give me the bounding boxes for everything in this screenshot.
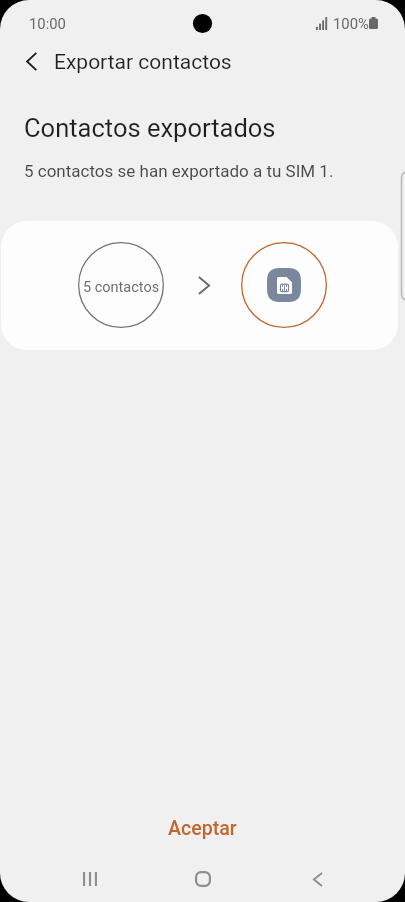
staticText: Aceptar bbox=[168, 817, 237, 840]
button[interactable]: Home bbox=[146, 856, 259, 902]
staticText: 5 contactos bbox=[83, 279, 160, 296]
button[interactable]: Back bbox=[259, 856, 372, 902]
button[interactable]: Recent apps bbox=[33, 856, 146, 902]
button[interactable]: Aceptar bbox=[0, 807, 405, 849]
staticText: Exportar contactos bbox=[54, 50, 232, 75]
staticText: 100% bbox=[333, 15, 369, 32]
staticText: 5 contactos se han exportado a tu SIM 1. bbox=[24, 161, 334, 181]
button[interactable]: Back bbox=[8, 38, 54, 84]
staticText: 10:00 bbox=[29, 15, 66, 32]
staticText: Contactos exportados bbox=[24, 113, 276, 143]
